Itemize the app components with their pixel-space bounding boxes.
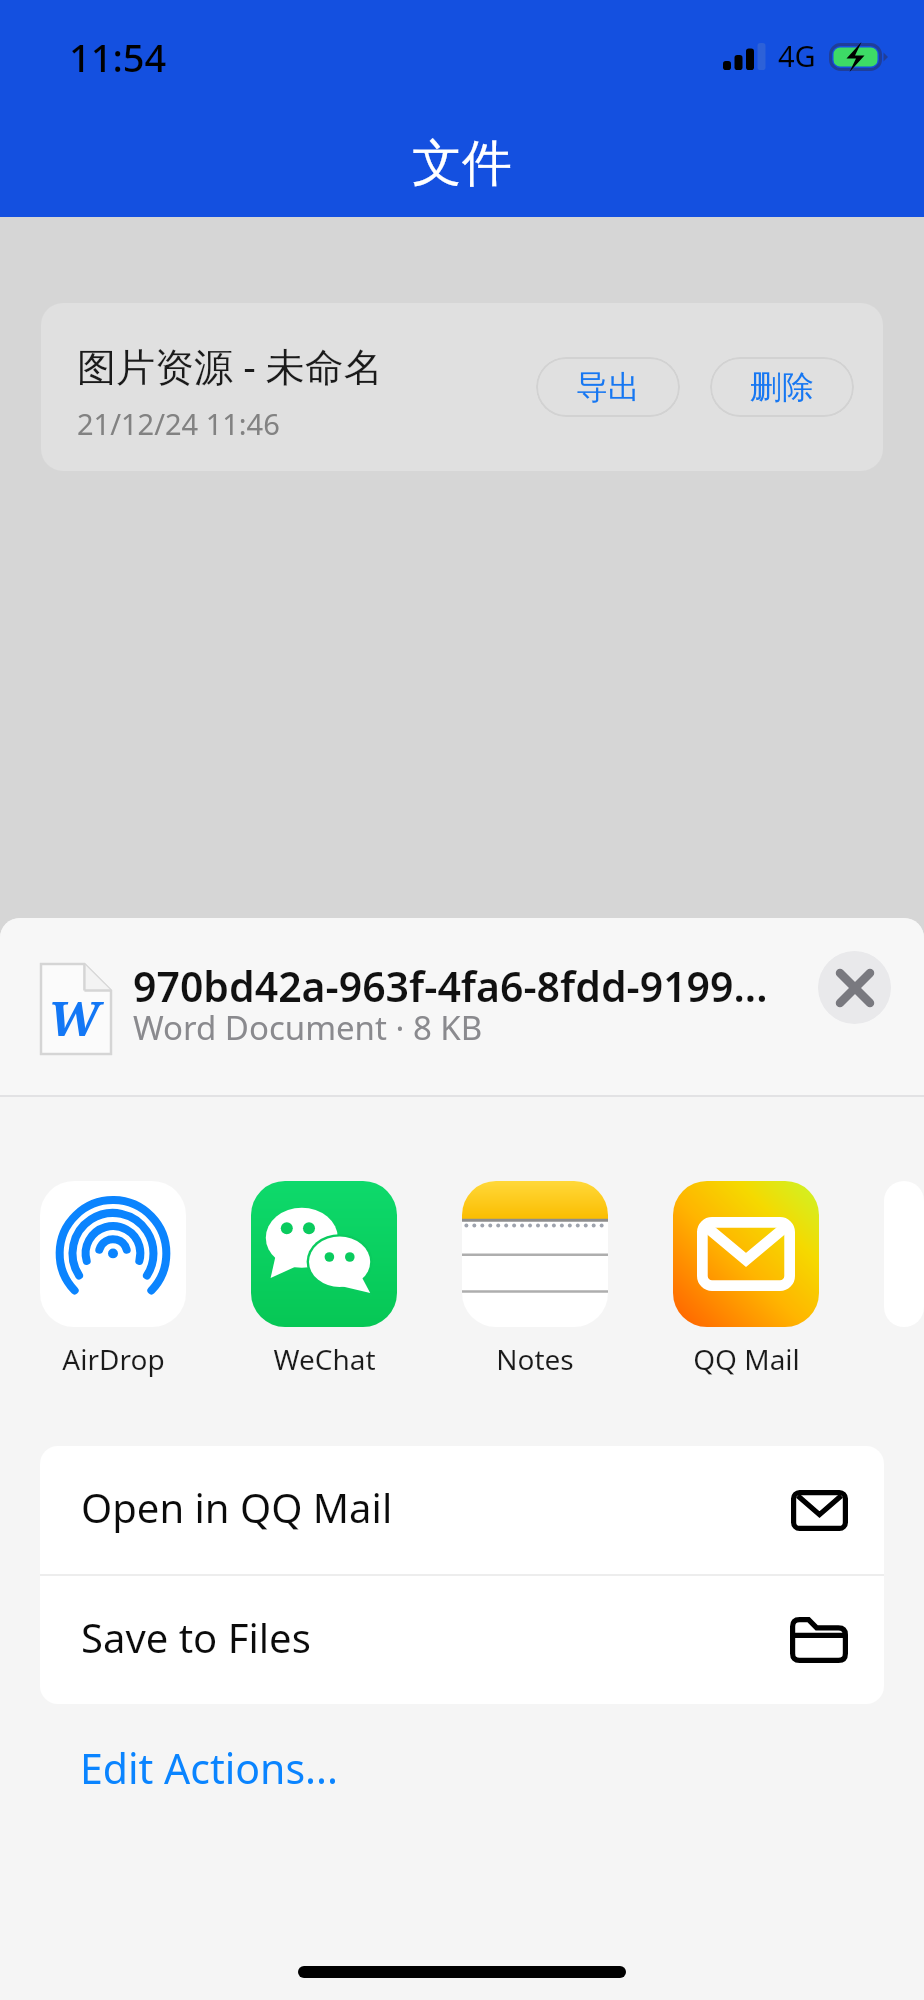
staticText: AirDrop <box>62 1340 165 1378</box>
button[interactable]: WeChat <box>251 1181 397 1378</box>
button[interactable]: Notes <box>462 1181 608 1378</box>
button[interactable]: QQ Mail <box>673 1181 819 1378</box>
staticText: Edit Actions... <box>80 1740 339 1796</box>
staticText: Open in QQ Mail <box>81 1480 791 1534</box>
button[interactable]: Save to Files <box>40 1576 884 1704</box>
staticText: 21/12/24 11:46 <box>77 404 280 443</box>
button[interactable]: AirDrop <box>40 1181 186 1378</box>
staticText: W <box>48 985 100 1050</box>
button[interactable]: 图片资源 - 未命名 <box>41 303 883 471</box>
staticText: 导出 <box>576 367 640 407</box>
staticText: 删除 <box>750 367 814 407</box>
staticText: 970bd42a-963f-4fa6-8fdd-9199... <box>133 958 768 1014</box>
staticText: QQ Mail <box>693 1340 800 1378</box>
button[interactable]: Open in QQ Mail <box>40 1446 884 1574</box>
button[interactable]: 删除 <box>710 357 854 417</box>
staticText: 4G <box>778 36 816 75</box>
button[interactable]: Close <box>818 951 891 1024</box>
staticText: Notes <box>496 1340 574 1378</box>
staticText: 11:54 <box>69 31 167 83</box>
button[interactable]: 导出 <box>536 357 680 417</box>
staticText: Save to Files <box>81 1610 790 1664</box>
staticText: 文件 <box>412 132 512 195</box>
staticText: Word Document · 8 KB <box>133 1005 483 1050</box>
staticText: 图片资源 - 未命名 <box>77 339 383 392</box>
button[interactable]: Edit Actions... <box>40 1730 379 1806</box>
staticText: WeChat <box>273 1340 376 1378</box>
